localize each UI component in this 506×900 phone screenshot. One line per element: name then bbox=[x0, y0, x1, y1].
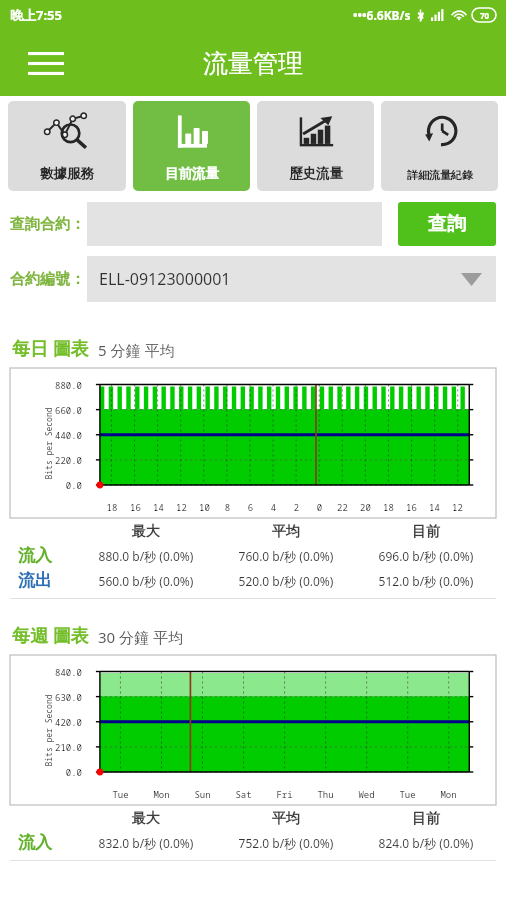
staticText: 2 bbox=[285, 501, 308, 513]
staticText: 5 分鐘 平均 bbox=[98, 340, 175, 360]
staticText: 4 bbox=[262, 501, 285, 513]
staticText: 752.0 b/秒 (0.0%) bbox=[216, 835, 356, 851]
staticText: 832.0 b/秒 (0.0%) bbox=[76, 835, 216, 851]
staticText: 660.0 bbox=[32, 404, 82, 416]
staticText: 詳細流量紀錄 bbox=[407, 168, 473, 182]
staticText: 8 bbox=[216, 501, 239, 513]
staticText: Tue bbox=[100, 788, 141, 800]
staticText: 0 bbox=[308, 501, 331, 513]
staticText: 824.0 b/秒 (0.0%) bbox=[356, 835, 496, 851]
staticText: 目前流量 bbox=[165, 165, 219, 182]
staticText: 696.0 b/秒 (0.0%) bbox=[356, 548, 496, 564]
staticText: Mon bbox=[141, 788, 182, 800]
staticText: 18 bbox=[377, 501, 400, 513]
staticText: •••6.6KB/s bbox=[353, 7, 411, 23]
staticText: 0.0 bbox=[32, 766, 82, 778]
staticText: 22 bbox=[331, 501, 354, 513]
staticText: 數據服務 bbox=[40, 165, 94, 182]
staticText: 14 bbox=[147, 501, 170, 513]
staticText: 平均 bbox=[216, 810, 356, 828]
staticText: 查詢合約： bbox=[10, 215, 85, 234]
staticText: 16 bbox=[124, 501, 147, 513]
staticText: Bits per Second bbox=[42, 407, 53, 479]
staticText: Mon bbox=[428, 788, 469, 800]
button[interactable]: 歷史流量 bbox=[257, 101, 374, 191]
staticText: 歷史流量 bbox=[289, 165, 343, 182]
staticText: 880.0 b/秒 (0.0%) bbox=[76, 548, 216, 564]
staticText: 14 bbox=[423, 501, 446, 513]
button[interactable]: 查詢 bbox=[398, 202, 496, 246]
staticText: 12 bbox=[446, 501, 469, 513]
staticText: 560.0 b/秒 (0.0%) bbox=[76, 573, 216, 589]
staticText: 520.0 b/秒 (0.0%) bbox=[216, 573, 356, 589]
staticText: Bits per Second bbox=[42, 694, 53, 766]
staticText: 10 bbox=[193, 501, 216, 513]
staticText: 最大 bbox=[76, 523, 216, 541]
staticText: 16 bbox=[400, 501, 423, 513]
staticText: 0.0 bbox=[32, 479, 82, 491]
staticText: 880.0 bbox=[32, 379, 82, 391]
staticText: 流入 bbox=[18, 545, 52, 566]
staticText: 20 bbox=[354, 501, 377, 513]
button[interactable]: 數據服務 bbox=[8, 101, 126, 191]
staticText: 30 分鐘 平均 bbox=[98, 627, 183, 647]
staticText: ELL-09123000001 bbox=[99, 268, 231, 290]
staticText: 晚上7:55 bbox=[10, 6, 62, 24]
staticText: Sat bbox=[223, 788, 264, 800]
staticText: Sun bbox=[182, 788, 223, 800]
staticText: 每週 圖表 bbox=[12, 623, 89, 648]
staticText: 流量管理 bbox=[203, 48, 303, 79]
staticText: 18 bbox=[100, 501, 124, 513]
staticText: 每日 圖表 bbox=[12, 336, 89, 361]
staticText: 630.0 bbox=[32, 691, 82, 703]
staticText: 最大 bbox=[76, 810, 216, 828]
staticText: Wed bbox=[346, 788, 387, 800]
staticText: 流出 bbox=[18, 570, 52, 591]
staticText: 760.0 b/秒 (0.0%) bbox=[216, 548, 356, 564]
staticText: 12 bbox=[170, 501, 193, 513]
staticText: 220.0 bbox=[32, 454, 82, 466]
staticText: 840.0 bbox=[32, 666, 82, 678]
staticText: 420.0 bbox=[32, 716, 82, 728]
staticText: 查詢 bbox=[428, 212, 466, 236]
staticText: Fri bbox=[264, 788, 305, 800]
button[interactable]: 目前流量 bbox=[133, 101, 250, 191]
staticText: 70 bbox=[480, 10, 490, 21]
staticText: 流入 bbox=[18, 832, 52, 853]
staticText: 210.0 bbox=[32, 741, 82, 753]
staticText: 目前 bbox=[356, 810, 496, 828]
staticText: 440.0 bbox=[32, 429, 82, 441]
staticText: 平均 bbox=[216, 523, 356, 541]
staticText: 6 bbox=[239, 501, 262, 513]
button[interactable]: Select contract number bbox=[87, 256, 496, 302]
staticText: Tue bbox=[387, 788, 428, 800]
button[interactable]: Open navigation menu bbox=[20, 37, 72, 89]
button[interactable]: 詳細流量紀錄 bbox=[381, 101, 498, 191]
staticText: 512.0 b/秒 (0.0%) bbox=[356, 573, 496, 589]
staticText: Thu bbox=[305, 788, 346, 800]
staticText: 合約編號： bbox=[10, 270, 85, 289]
staticText: 目前 bbox=[356, 523, 496, 541]
